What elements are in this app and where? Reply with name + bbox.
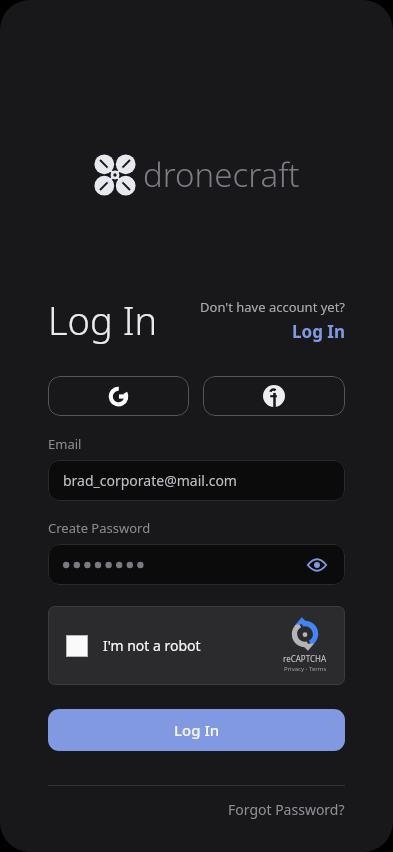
button[interactable]: Log In — [292, 320, 345, 343]
button[interactable]: Forgot Password? — [228, 800, 345, 819]
staticText: Privacy - Terms — [284, 665, 327, 673]
staticText: Forgot Password? — [228, 800, 345, 819]
button[interactable]: Sign in with Facebook — [203, 376, 345, 416]
button[interactable]: I'm not a robot — [48, 606, 345, 685]
staticText: Create Password — [48, 519, 151, 537]
button[interactable]: Show password — [48, 544, 345, 585]
button[interactable]: Show password — [304, 552, 330, 578]
button[interactable]: brad_corporate@mail.com — [48, 460, 345, 501]
staticText: reCAPTCHA — [283, 653, 327, 664]
staticText: Log In — [292, 320, 345, 343]
staticText: Don't have account yet? — [200, 298, 345, 316]
staticText: Email — [48, 435, 82, 453]
staticText: I'm not a robot — [103, 636, 201, 655]
staticText: dronecraft — [143, 152, 300, 197]
staticText: brad_corporate@mail.com — [63, 471, 237, 490]
staticText: Log In — [174, 720, 220, 740]
button[interactable]: Sign in with Google — [48, 376, 189, 416]
button[interactable]: Log In — [48, 709, 345, 751]
staticText: Log In — [48, 294, 158, 346]
